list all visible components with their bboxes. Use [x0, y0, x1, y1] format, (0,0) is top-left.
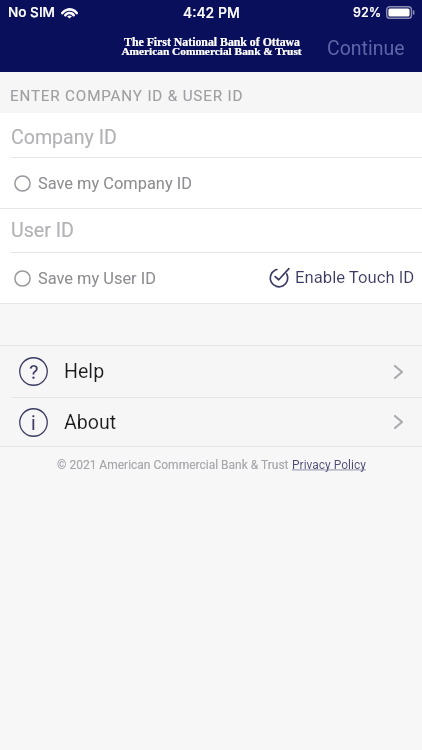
staticText: ?	[29, 361, 39, 383]
staticText: The First National Bank of Ottawa	[124, 35, 300, 48]
staticText: i	[31, 412, 36, 434]
button[interactable]: Company ID	[0, 113, 422, 157]
staticText: © 2021 American Commercial Bank & Trust	[57, 458, 292, 472]
button[interactable]: ?	[0, 346, 422, 397]
staticText: 4:42 PM	[183, 4, 240, 21]
staticText: Company ID	[11, 126, 117, 149]
button[interactable]: Enable Touch ID	[261, 260, 422, 296]
staticText: No SIM	[8, 4, 56, 20]
button[interactable]: i	[0, 398, 422, 446]
staticText: Continue	[327, 37, 405, 60]
staticText: Help	[64, 360, 105, 383]
staticText: User ID	[11, 219, 74, 242]
button[interactable]: Continue	[313, 34, 422, 67]
staticText: Enable Touch ID	[295, 268, 415, 288]
staticText: 92%	[353, 5, 382, 20]
button[interactable]: Save my User ID	[0, 261, 164, 296]
button[interactable]: Privacy Policy	[292, 458, 366, 472]
other: About	[394, 415, 403, 429]
staticText: ENTER COMPANY ID & USER ID	[10, 87, 244, 105]
staticText: About	[64, 411, 117, 434]
staticText: Save my User ID	[38, 269, 156, 288]
staticText: Save my Company ID	[38, 174, 192, 193]
button[interactable]: User ID	[0, 209, 422, 252]
other: Help	[394, 365, 403, 379]
staticText: Privacy Policy	[292, 458, 366, 472]
button[interactable]: Save my Company ID	[0, 166, 200, 201]
staticText: American Commercial Bank & Trust	[121, 45, 302, 58]
